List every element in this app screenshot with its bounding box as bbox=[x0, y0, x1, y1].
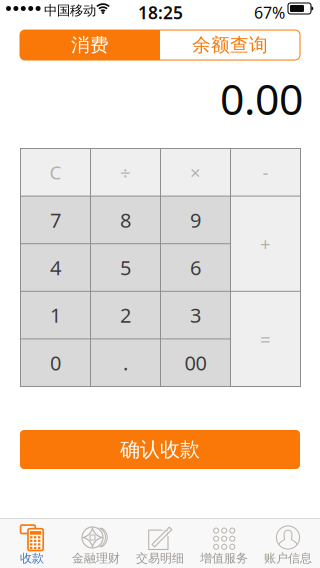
staticText: . bbox=[123, 349, 128, 376]
button[interactable]: 9 bbox=[161, 197, 230, 243]
staticText: 0.00 bbox=[220, 70, 303, 127]
button[interactable]: 5 bbox=[91, 244, 160, 291]
button[interactable]: × bbox=[161, 149, 230, 196]
staticText: 3 bbox=[190, 302, 201, 328]
staticText: 18:25 bbox=[138, 1, 183, 24]
button[interactable]: 3 bbox=[161, 292, 230, 338]
staticText: ÷ bbox=[120, 160, 131, 185]
staticText: 账户信息 bbox=[264, 551, 312, 566]
staticText: 0 bbox=[50, 349, 61, 376]
staticText: 消费 bbox=[71, 33, 109, 56]
button[interactable]: 2 bbox=[91, 292, 160, 338]
staticText: 9 bbox=[190, 207, 201, 233]
button[interactable]: 8 bbox=[91, 197, 160, 243]
staticText: 7 bbox=[50, 207, 61, 233]
staticText: 8 bbox=[120, 207, 131, 233]
staticText: 金融理财 bbox=[72, 551, 120, 566]
staticText: 2 bbox=[120, 302, 131, 328]
staticText: 5 bbox=[120, 254, 131, 281]
button[interactable]: 余额查询 bbox=[160, 30, 300, 60]
button[interactable]: 增值服务 bbox=[192, 518, 256, 568]
button[interactable]: C bbox=[21, 149, 90, 196]
staticText: 6 bbox=[190, 254, 201, 281]
button[interactable]: 金融理财 bbox=[64, 518, 128, 568]
button[interactable]: 1 bbox=[21, 292, 90, 338]
button[interactable]: - bbox=[231, 149, 300, 196]
button[interactable]: 消费 bbox=[20, 30, 160, 60]
button[interactable]: = bbox=[231, 292, 300, 386]
button[interactable]: 收款 bbox=[0, 518, 64, 568]
button[interactable]: 00 bbox=[161, 339, 230, 386]
staticText: × bbox=[190, 160, 201, 185]
staticText: = bbox=[260, 326, 271, 351]
button[interactable]: 6 bbox=[161, 244, 230, 291]
staticText: 00 bbox=[184, 349, 206, 376]
button[interactable]: 交易明细 bbox=[128, 518, 192, 568]
button[interactable]: 账户信息 bbox=[256, 518, 320, 568]
button[interactable]: 7 bbox=[21, 197, 90, 243]
button[interactable]: 0 bbox=[21, 339, 90, 386]
staticText: 1 bbox=[50, 302, 61, 328]
staticText: 余额查询 bbox=[192, 33, 268, 56]
staticText: C bbox=[49, 160, 61, 185]
staticText: 4 bbox=[50, 254, 61, 281]
button[interactable]: . bbox=[91, 339, 160, 386]
button[interactable]: 4 bbox=[21, 244, 90, 291]
staticText: 中国移动 bbox=[44, 2, 96, 19]
staticText: 确认收款 bbox=[120, 437, 200, 462]
button[interactable]: 确认收款 bbox=[20, 430, 300, 469]
staticText: 交易明细 bbox=[136, 551, 184, 566]
staticText: + bbox=[260, 231, 271, 256]
staticText: 67% bbox=[254, 2, 285, 23]
button[interactable]: + bbox=[231, 197, 300, 291]
staticText: 收款 bbox=[20, 551, 44, 566]
staticText: 增值服务 bbox=[200, 551, 248, 566]
staticText: - bbox=[262, 160, 268, 185]
button[interactable]: ÷ bbox=[91, 149, 160, 196]
